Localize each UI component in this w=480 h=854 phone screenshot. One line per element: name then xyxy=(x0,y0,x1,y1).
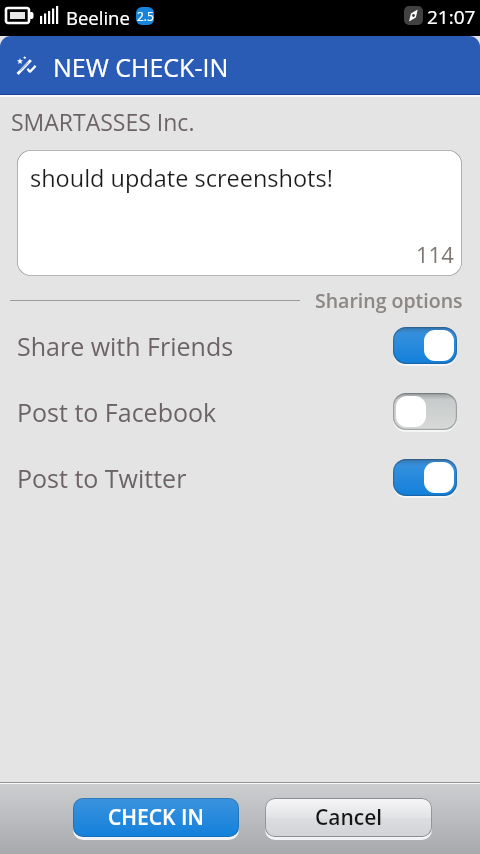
button[interactable]: Cancel xyxy=(265,798,432,837)
staticText: NEW CHECK-IN xyxy=(53,50,229,84)
button[interactable]: Post to Facebook xyxy=(0,379,480,445)
staticText: Cancel xyxy=(315,803,383,832)
staticText: 21:07 xyxy=(427,4,476,30)
other: New check-in xyxy=(16,54,37,75)
staticText: Beeline xyxy=(66,5,130,30)
button[interactable]: CHECK IN xyxy=(73,798,239,837)
button[interactable]: New check-in xyxy=(0,36,480,95)
button[interactable]: should update screenshots! xyxy=(17,150,462,276)
staticText: Post to Facebook xyxy=(17,395,393,429)
button[interactable]: Post to Twitter xyxy=(0,445,480,511)
button[interactable]: Share with Friends xyxy=(0,313,480,379)
staticText: SMARTASSES Inc. xyxy=(11,106,195,137)
button[interactable]: Post to Facebook, off xyxy=(393,393,457,432)
staticText: 2.5 xyxy=(137,8,154,24)
staticText: 114 xyxy=(416,239,454,269)
staticText: Sharing options xyxy=(315,287,463,314)
staticText: should update screenshots! xyxy=(30,162,333,194)
staticText: CHECK IN xyxy=(108,803,204,832)
other: Location xyxy=(404,6,423,25)
staticText: Post to Twitter xyxy=(17,461,393,495)
staticText: Share with Friends xyxy=(17,329,393,363)
button[interactable]: Share with Friends, on xyxy=(393,327,457,366)
button[interactable]: Post to Twitter, on xyxy=(393,459,457,498)
